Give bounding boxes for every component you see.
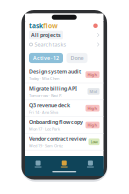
- button[interactable]: Onboarding flow copy: [25, 117, 103, 134]
- staticText: Migrate billing API: [29, 85, 77, 92]
- staticText: task: [29, 21, 43, 30]
- staticText: Mon 17 · Lee Park: [29, 126, 60, 132]
- button[interactable]: Active · 12: [29, 53, 63, 63]
- button[interactable]: All projects: [25, 30, 103, 39]
- staticText: Low: [90, 139, 97, 144]
- button[interactable]: Profile: [77, 157, 103, 171]
- button[interactable]: Migrate billing API: [25, 83, 103, 100]
- button[interactable]: Notifications: [91, 22, 99, 30]
- button[interactable]: Q3 revenue deck: [25, 100, 103, 117]
- button[interactable]: Vendor contract review: [25, 134, 103, 150]
- button[interactable]: Design system audit: [25, 66, 103, 83]
- staticText: Design system audit: [29, 68, 81, 75]
- staticText: Onboarding flow copy: [29, 118, 83, 125]
- staticText: Vendor contract review: [29, 135, 86, 142]
- staticText: flow: [43, 21, 58, 30]
- staticText: Mid: [89, 89, 97, 94]
- button[interactable]: Tasks: [51, 157, 77, 171]
- staticText: Active · 12: [33, 54, 59, 62]
- staticText: Tomorrow · Ravi P.: [29, 93, 62, 98]
- staticText: Today · Mia Chen: [29, 76, 59, 81]
- staticText: High: [87, 122, 97, 128]
- staticText: High: [87, 72, 97, 77]
- staticText: Search tasks: [35, 41, 67, 48]
- button[interactable]: Home: [25, 157, 51, 171]
- staticText: Wed 19 · Sam Ortiz: [29, 143, 63, 148]
- staticText: Q3 revenue deck: [29, 102, 70, 109]
- staticText: High: [87, 105, 97, 111]
- staticText: All projects: [31, 31, 61, 39]
- staticText: Fri 14 · Ana Silva: [29, 109, 58, 115]
- staticText: Done: [70, 54, 83, 62]
- button[interactable]: Done: [66, 53, 87, 63]
- button[interactable]: Search tasks: [25, 39, 103, 49]
